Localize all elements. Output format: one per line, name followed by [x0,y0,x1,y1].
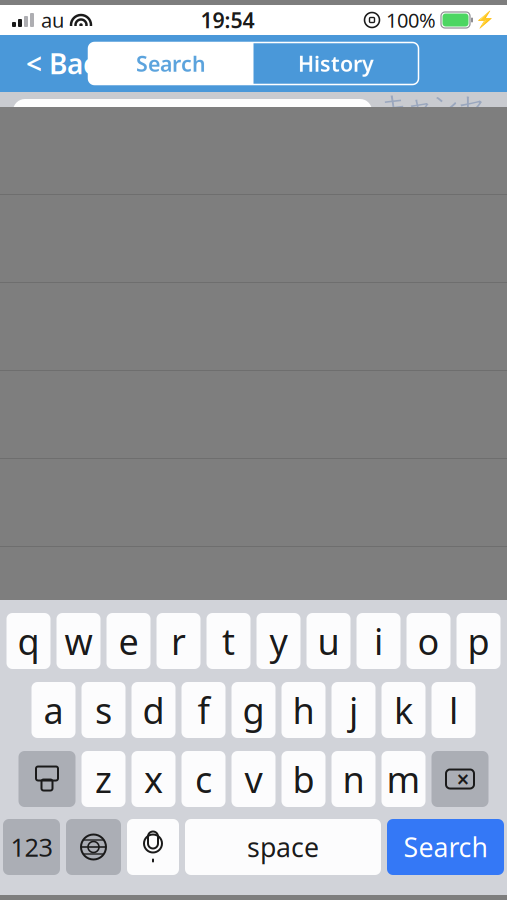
button[interactable]: c [181,751,225,807]
staticText: ⚡ [475,11,495,29]
staticText: Search [403,829,487,865]
staticText: f [197,686,209,734]
staticText: u [317,617,339,665]
staticText: space [247,829,319,865]
staticText: v [244,755,262,803]
button[interactable]: q [6,613,50,669]
button[interactable]: e [106,613,150,669]
button[interactable]: 123 [3,819,60,875]
button[interactable]: Delete [431,751,488,807]
button[interactable]: t [206,613,250,669]
button[interactable]: Next keyboard [66,819,121,875]
button[interactable]: f [181,682,225,738]
staticText: Search [53,102,141,140]
button[interactable]: a [31,682,75,738]
button[interactable]: Dictation [127,819,179,875]
button[interactable]: k [381,682,425,738]
staticText: i [374,617,383,665]
button[interactable]: Shift [18,751,75,807]
staticText: キャンセル [381,90,485,152]
staticText: History [298,49,374,78]
staticText: b [292,755,314,803]
button[interactable]: Search [88,42,253,84]
staticText: g [242,686,264,734]
button[interactable]: j [331,682,375,738]
button[interactable]: g [231,682,275,738]
staticText: × [456,764,469,794]
button[interactable]: v [231,751,275,807]
staticText: 19:54 [200,6,254,34]
staticText: t [222,617,235,665]
button[interactable]: p [456,613,500,669]
staticText: n [342,755,364,803]
staticText: z [95,755,112,803]
button[interactable]: s [81,682,125,738]
button[interactable]: y [256,613,300,669]
button[interactable]: u [306,613,350,669]
staticText: o [417,617,439,665]
staticText: k [394,686,413,734]
button[interactable]: Search [387,819,504,875]
staticText: w [64,617,92,665]
staticText: h [292,686,314,734]
staticText: au [41,7,64,33]
button[interactable]: h [281,682,325,738]
button[interactable]: i [356,613,400,669]
button[interactable]: o [406,613,450,669]
staticText: p [467,617,489,665]
staticText: < Back [26,45,113,82]
staticText: a [43,686,63,734]
staticText: q [17,617,39,665]
button[interactable]: m [381,751,425,807]
staticText: 123 [10,830,52,864]
button[interactable]: d [131,682,175,738]
button[interactable]: z [81,751,125,807]
button[interactable]: History [253,42,418,84]
button[interactable]: キャンセル [372,99,494,143]
staticText: Search [136,49,206,78]
staticText: j [349,686,358,734]
staticText: y [269,617,287,665]
staticText: e [118,617,138,665]
button[interactable]: x [131,751,175,807]
button[interactable]: n [331,751,375,807]
button[interactable]: b [281,751,325,807]
button[interactable]: w [56,613,100,669]
button[interactable]: < Back [0,35,113,92]
staticText: d [142,686,164,734]
staticText: r [171,617,186,665]
staticText: 100% [386,7,436,33]
button[interactable]: space [185,819,381,875]
staticText: m [386,755,420,803]
staticText: c [195,755,212,803]
staticText: l [449,686,458,734]
button[interactable]: l [431,682,475,738]
staticText: x [144,755,163,803]
button[interactable]: r [156,613,200,669]
staticText: s [95,686,112,734]
